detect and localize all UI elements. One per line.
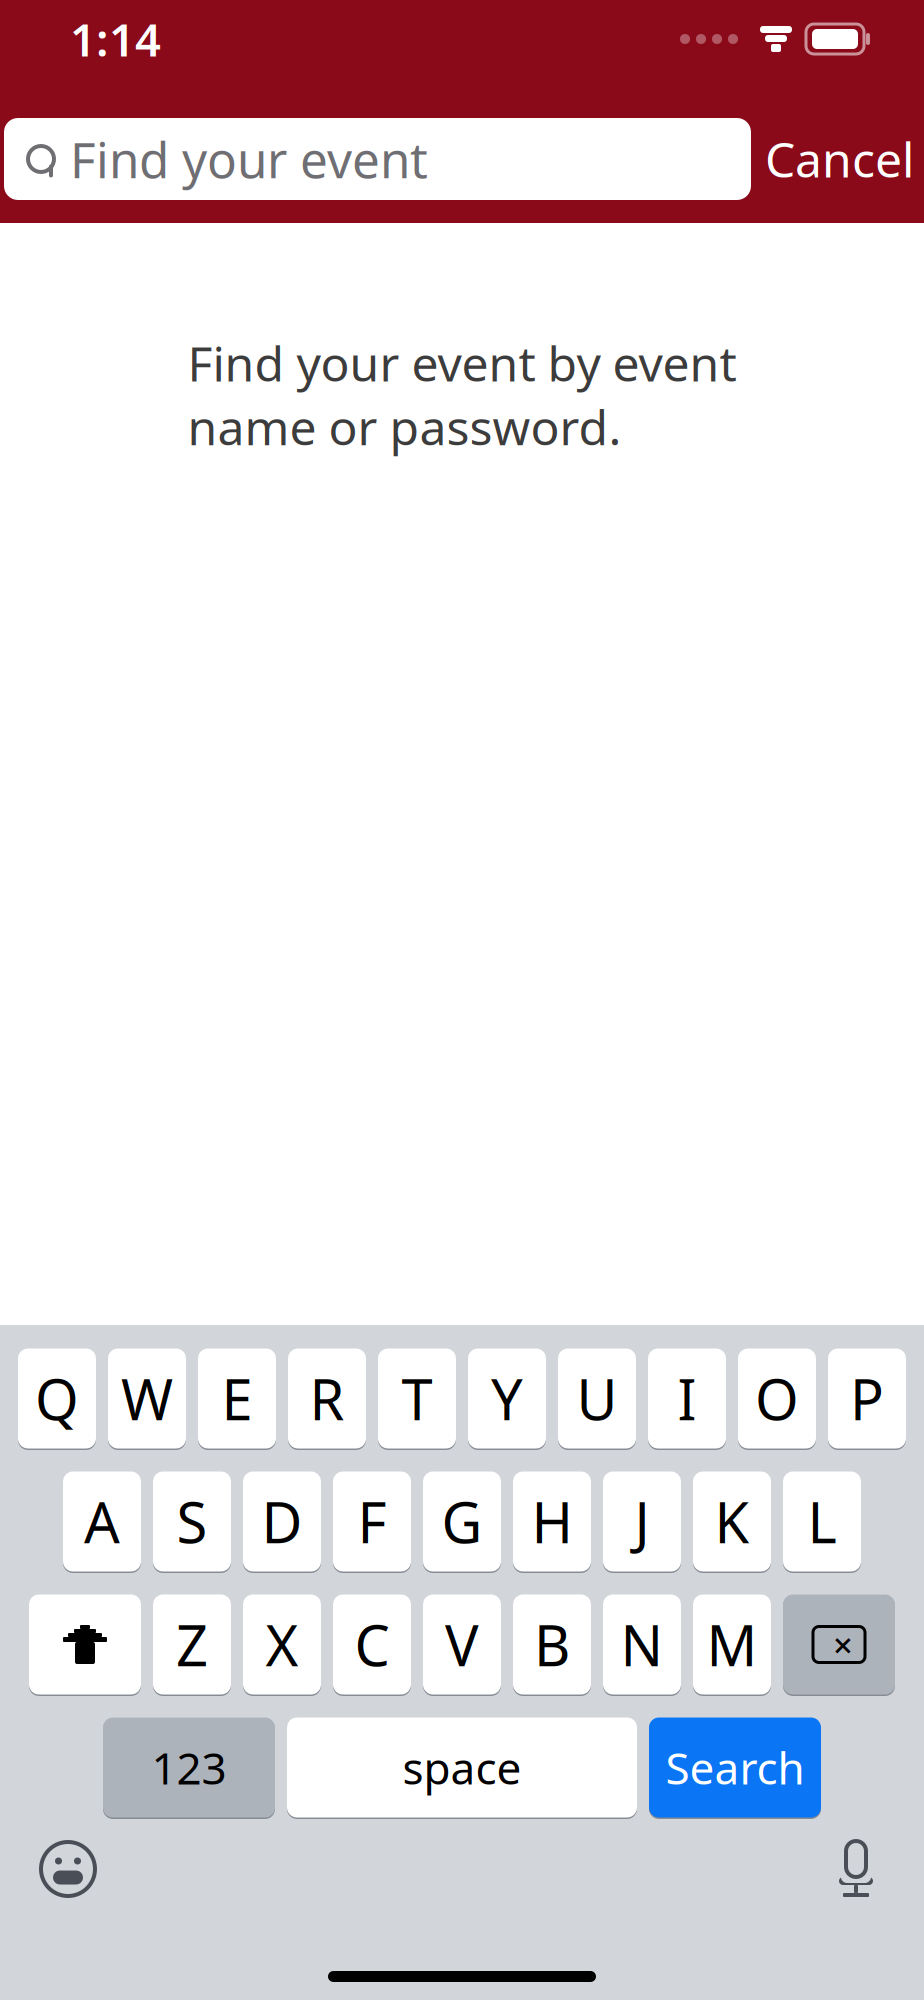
staticText: F	[357, 1484, 386, 1559]
button[interactable]: J	[603, 1470, 681, 1573]
button[interactable]: O	[738, 1347, 816, 1450]
button[interactable]: S	[153, 1470, 231, 1573]
button[interactable]: K	[693, 1470, 771, 1573]
button[interactable]: Z	[153, 1593, 231, 1696]
button[interactable]: U	[558, 1347, 636, 1450]
button[interactable]: N	[603, 1593, 681, 1696]
staticText: O	[755, 1361, 799, 1436]
staticText: J	[634, 1484, 649, 1559]
staticText: C	[354, 1607, 389, 1682]
button[interactable]: Delete	[783, 1593, 895, 1696]
button[interactable]: G	[423, 1470, 501, 1573]
staticText: Q	[35, 1361, 79, 1436]
button[interactable]: 123	[103, 1716, 275, 1819]
staticText: E	[221, 1361, 252, 1436]
staticText: T	[401, 1361, 432, 1436]
button[interactable]: Q	[18, 1347, 96, 1450]
button[interactable]: space	[287, 1716, 637, 1819]
staticText: Find your event by event name or passwor…	[187, 331, 736, 458]
staticText: 123	[151, 1738, 226, 1797]
button[interactable]: V	[423, 1593, 501, 1696]
button[interactable]: Search	[649, 1716, 821, 1819]
staticText: N	[620, 1607, 663, 1682]
staticText: H	[531, 1484, 572, 1559]
button[interactable]: L	[783, 1470, 861, 1573]
staticText: Cancel	[765, 127, 914, 191]
staticText: L	[807, 1484, 836, 1559]
button[interactable]: Dictate	[820, 1833, 892, 1905]
staticText: ×	[833, 1621, 853, 1667]
staticText: Y	[491, 1361, 523, 1436]
staticText: Search	[665, 1738, 804, 1797]
staticText: P	[850, 1361, 884, 1436]
button[interactable]: T	[378, 1347, 456, 1450]
staticText: B	[534, 1607, 570, 1682]
button[interactable]: Shift	[29, 1593, 141, 1696]
button[interactable]: M	[693, 1593, 771, 1696]
button[interactable]: Find your event	[4, 118, 751, 200]
button[interactable]: E	[198, 1347, 276, 1450]
button[interactable]: A	[63, 1470, 141, 1573]
button[interactable]: B	[513, 1593, 591, 1696]
button[interactable]: X	[243, 1593, 321, 1696]
button[interactable]: H	[513, 1470, 591, 1573]
button[interactable]: Y	[468, 1347, 546, 1450]
staticText: Z	[176, 1607, 208, 1682]
staticText: space	[402, 1738, 521, 1797]
staticText: U	[576, 1361, 617, 1436]
button[interactable]: Cancel	[751, 118, 924, 200]
button[interactable]: D	[243, 1470, 321, 1573]
button[interactable]: Emoji	[32, 1833, 104, 1905]
staticText: Find your event	[70, 126, 428, 192]
staticText: R	[309, 1361, 344, 1436]
staticText: V	[445, 1607, 479, 1682]
button[interactable]: R	[288, 1347, 366, 1450]
staticText: W	[121, 1361, 173, 1436]
staticText: X	[265, 1607, 298, 1682]
staticText: D	[261, 1484, 302, 1559]
staticText: A	[84, 1484, 120, 1559]
button[interactable]: W	[108, 1347, 186, 1450]
button[interactable]: F	[333, 1470, 411, 1573]
button[interactable]: P	[828, 1347, 906, 1450]
button[interactable]: C	[333, 1593, 411, 1696]
staticText: G	[441, 1484, 482, 1559]
staticText: M	[706, 1607, 757, 1682]
staticText: S	[176, 1484, 207, 1559]
button[interactable]: I	[648, 1347, 726, 1450]
staticText: I	[677, 1361, 696, 1436]
staticText: 1:14	[70, 9, 161, 69]
staticText: K	[714, 1484, 749, 1559]
